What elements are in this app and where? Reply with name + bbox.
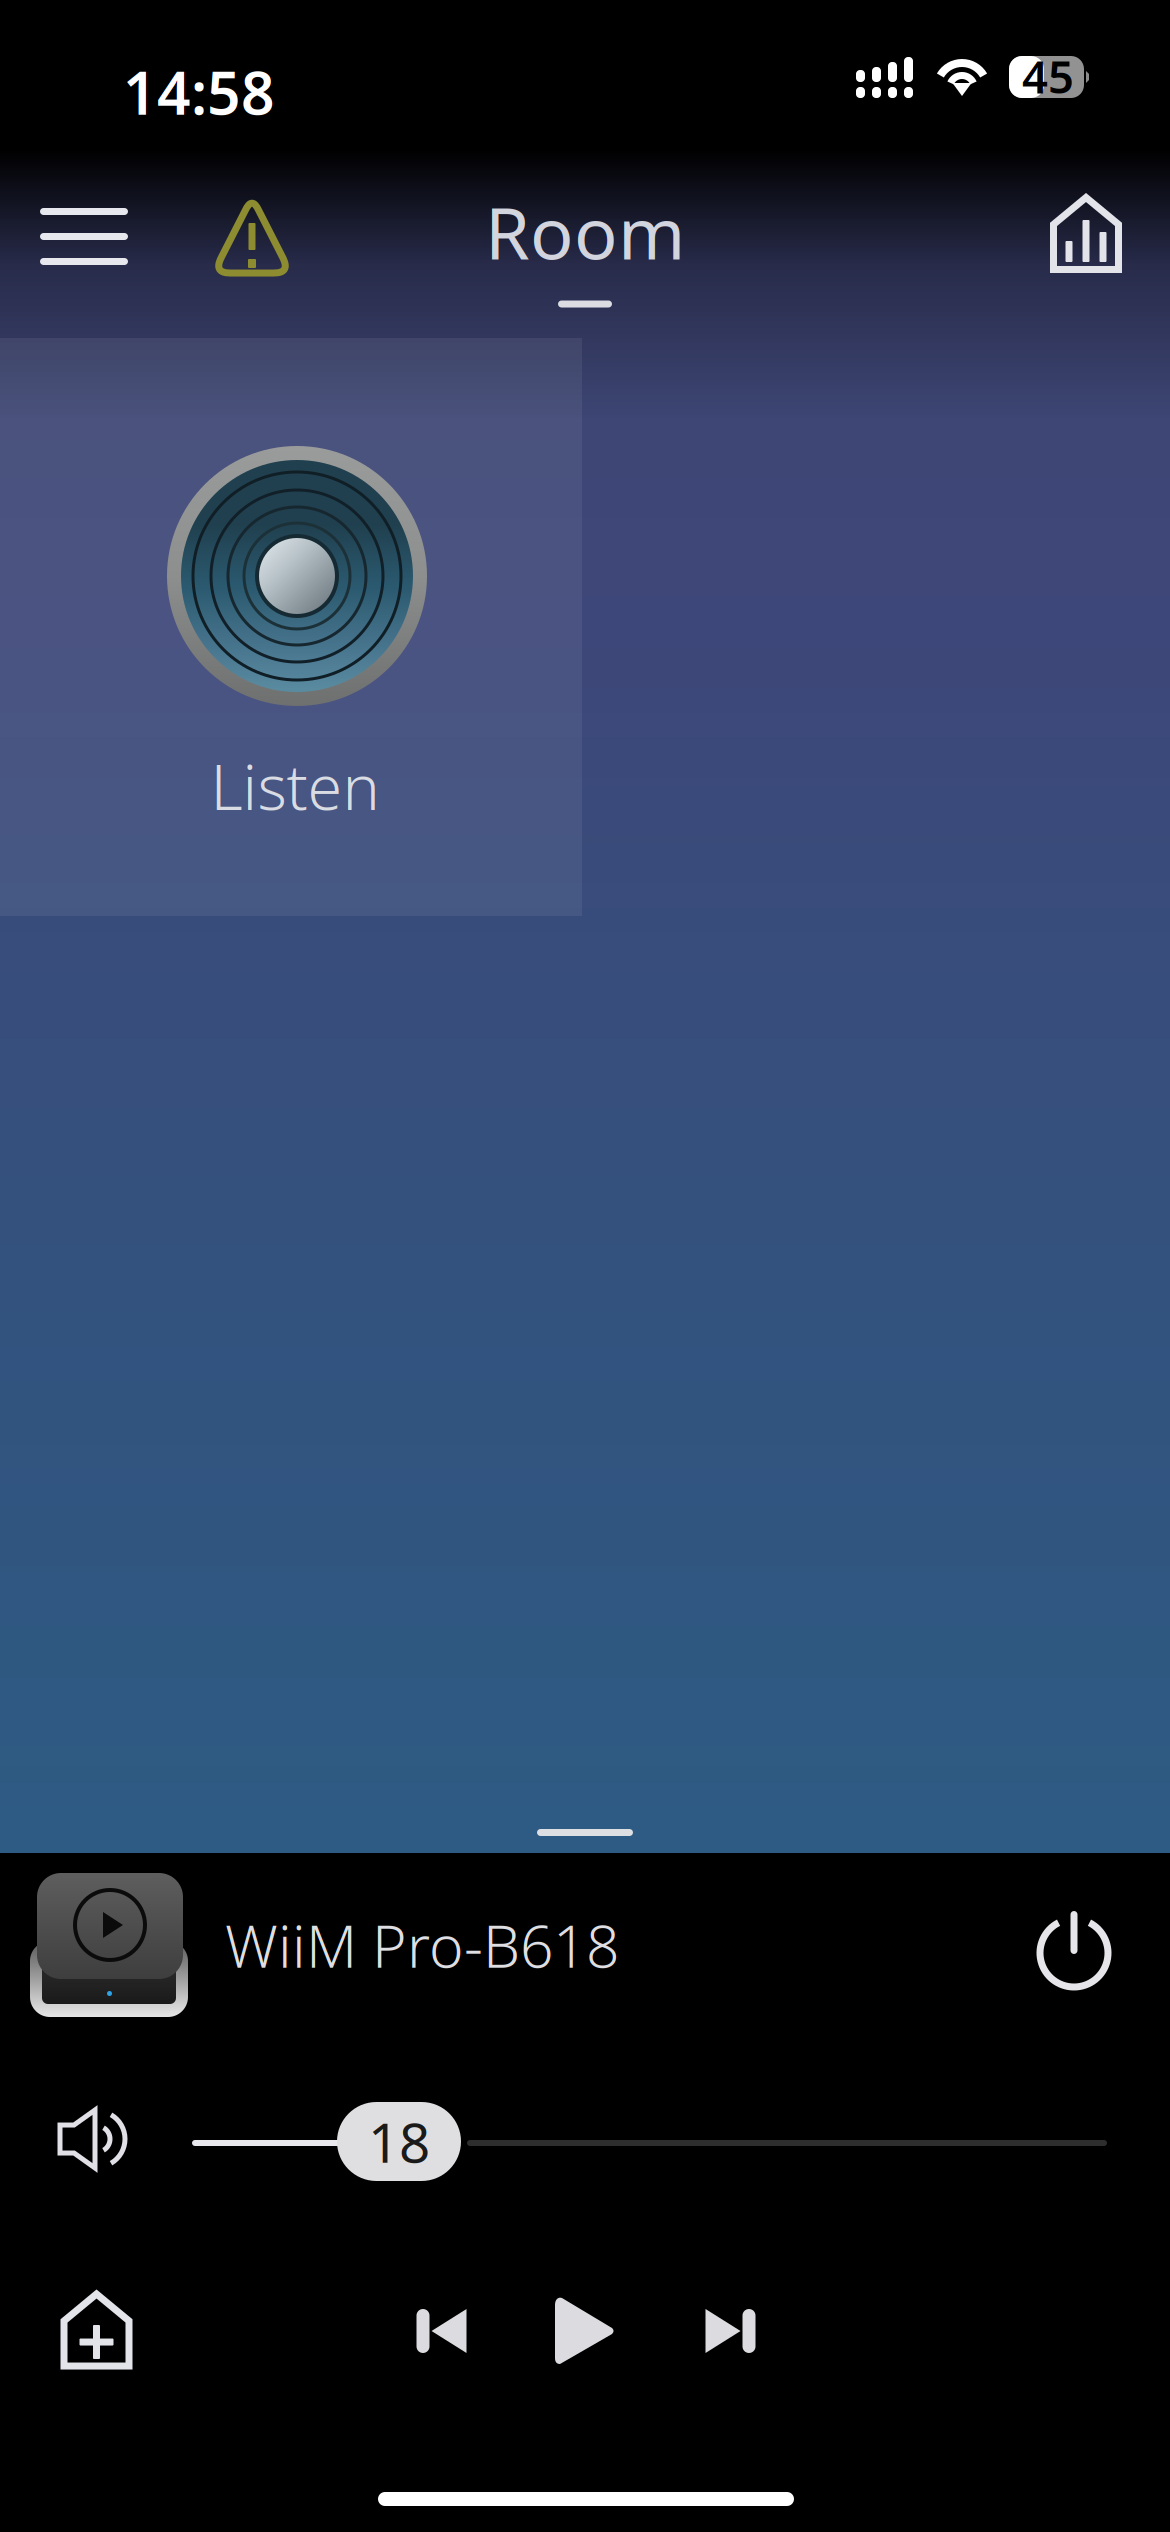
button[interactable]: Previous track: [409, 2309, 459, 2353]
button[interactable]: Add to home: [59, 2291, 134, 2369]
staticText: Room: [485, 184, 685, 279]
staticText: 18: [368, 2105, 430, 2178]
button[interactable]: WiiM Pro-B618: [225, 1900, 619, 1990]
button[interactable]: Volume 18: [337, 2102, 461, 2181]
staticText: WiiM Pro-B618: [225, 1906, 619, 1984]
button[interactable]: Power: [1019, 1895, 1129, 2005]
button[interactable]: Next track: [698, 2309, 748, 2353]
button[interactable]: Home statistics: [1028, 177, 1144, 289]
button[interactable]: Play: [555, 2296, 615, 2366]
button[interactable]: Listen: [0, 338, 582, 916]
button[interactable]: Warnings: [194, 178, 310, 290]
staticText: 45: [1022, 46, 1074, 106]
staticText: 14:58: [123, 53, 275, 131]
staticText: Listen: [210, 744, 379, 827]
button[interactable]: Menu: [20, 180, 148, 292]
button[interactable]: WiiM Pro-B618 device: [28, 1852, 188, 2000]
